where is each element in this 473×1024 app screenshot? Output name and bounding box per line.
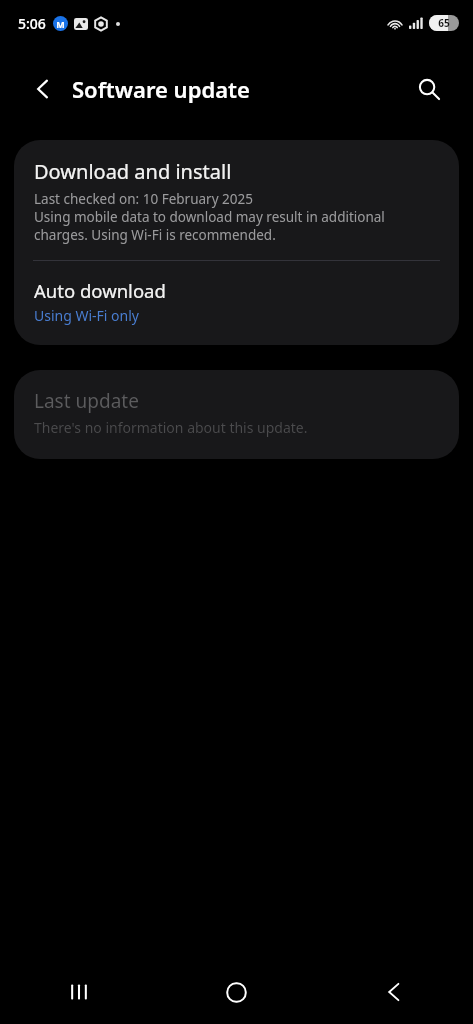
button[interactable]: Back <box>315 960 473 1024</box>
button[interactable]: Auto download <box>14 261 459 345</box>
staticText: 5:06 <box>18 14 46 33</box>
button[interactable]: Search <box>407 67 451 111</box>
button[interactable]: Home <box>157 960 315 1024</box>
staticText: Using Wi-Fi only <box>34 306 139 325</box>
staticText: Using mobile data to download may result… <box>34 208 439 244</box>
staticText: Last checked on: 10 February 2025 <box>34 190 253 208</box>
staticText: Auto download <box>34 278 166 303</box>
button[interactable]: Recent apps <box>0 960 157 1024</box>
button[interactable]: Back <box>20 66 66 112</box>
staticText: Last update <box>34 388 139 414</box>
staticText: There's no information about this update… <box>34 418 308 437</box>
staticText: M <box>56 18 65 30</box>
button[interactable]: Download and install <box>14 140 459 260</box>
staticText: 65 <box>438 16 450 30</box>
staticText: Download and install <box>34 158 232 185</box>
staticText: Software update <box>72 74 250 104</box>
button[interactable]: Last update <box>14 370 459 459</box>
